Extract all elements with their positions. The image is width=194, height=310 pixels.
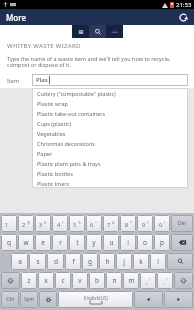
- staticText: Plastic take-out containers: [37, 110, 106, 117]
- button[interactable]: v: [72, 272, 88, 289]
- staticText: ^: [95, 220, 98, 225]
- staticText: f: [72, 257, 75, 266]
- staticText: j: [123, 257, 125, 266]
- button[interactable]: Christmas decorations: [32, 138, 188, 148]
- button[interactable]: Backspace: [171, 234, 193, 251]
- staticText: 6: [90, 221, 94, 228]
- staticText: u: [109, 238, 114, 247]
- button[interactable]: m: [123, 272, 139, 289]
- button[interactable]: q: [1, 234, 17, 251]
- button[interactable]: s: [29, 253, 46, 270]
- button[interactable]: Shift right: [174, 272, 193, 289]
- staticText: English(US): [84, 295, 108, 301]
- button[interactable]: 0: [154, 215, 170, 232]
- staticText: /: [62, 220, 64, 225]
- button[interactable]: Plastic plant pots & trays: [32, 158, 188, 168]
- staticText: x: [44, 276, 48, 285]
- button[interactable]: o: [137, 234, 153, 251]
- button[interactable]: Del: [171, 215, 193, 232]
- staticText: 5: [73, 221, 77, 228]
- button[interactable]: Plas: [32, 74, 188, 86]
- button[interactable]: Vegetables: [32, 128, 188, 138]
- button[interactable]: Cups (plastic): [32, 118, 188, 128]
- button[interactable]: List tab: [72, 25, 89, 38]
- button[interactable]: Shift: [1, 272, 20, 289]
- button[interactable]: Search tab: [89, 25, 106, 38]
- button[interactable]: h: [99, 253, 115, 270]
- staticText: 9: [142, 221, 146, 228]
- staticText: Plas: [36, 76, 48, 84]
- button[interactable]: .: [157, 272, 173, 289]
- staticText: Sym: [24, 296, 34, 303]
- button[interactable]: 1: [1, 215, 17, 232]
- button[interactable]: Plastic take-out containers: [32, 108, 188, 118]
- staticText: t: [76, 238, 79, 247]
- staticText: y: [92, 238, 96, 247]
- button[interactable]: t: [69, 234, 85, 251]
- button[interactable]: x: [38, 272, 54, 289]
- button[interactable]: f: [65, 253, 81, 270]
- button[interactable]: Space: [58, 291, 133, 308]
- button[interactable]: d: [47, 253, 64, 270]
- staticText: n: [112, 276, 117, 285]
- button[interactable]: 3: [35, 215, 51, 232]
- button[interactable]: More tab: [106, 25, 123, 38]
- button[interactable]: g: [82, 253, 98, 270]
- button[interactable]: 2: [18, 215, 34, 232]
- button[interactable]: k: [133, 253, 149, 270]
- staticText: c: [61, 276, 65, 285]
- staticText: Del: [178, 220, 186, 227]
- staticText: %: [78, 220, 81, 225]
- button[interactable]: c: [55, 272, 71, 289]
- staticText: Cutlery ("compostable" plastic): [37, 90, 116, 97]
- button[interactable]: i: [120, 234, 136, 251]
- staticText: ?: [166, 277, 168, 282]
- button[interactable]: e: [35, 234, 51, 251]
- button[interactable]: 7: [103, 215, 119, 232]
- button[interactable]: 6: [86, 215, 102, 232]
- button[interactable]: Paper: [32, 148, 188, 158]
- button[interactable]: 8: [120, 215, 136, 232]
- button[interactable]: ,: [140, 272, 156, 289]
- staticText: 7: [107, 221, 111, 228]
- button[interactable]: w: [18, 234, 34, 251]
- button[interactable]: b: [89, 272, 105, 289]
- button[interactable]: 5: [69, 215, 85, 232]
- button[interactable]: Input settings: [39, 291, 57, 308]
- button[interactable]: j: [116, 253, 132, 270]
- staticText: Plastic plant pots & trays: [37, 160, 101, 167]
- button[interactable]: z: [21, 272, 37, 289]
- button[interactable]: Plastic bottles: [32, 168, 188, 178]
- staticText: ,: [146, 278, 148, 285]
- button[interactable]: Move left: [134, 291, 163, 308]
- button[interactable]: 4: [52, 215, 68, 232]
- button[interactable]: 9: [137, 215, 153, 232]
- button[interactable]: Plastic wrap: [32, 98, 188, 108]
- staticText: d: [54, 257, 58, 266]
- staticText: 4: [57, 221, 61, 228]
- button[interactable]: Move right: [164, 291, 193, 308]
- button[interactable]: r: [52, 234, 68, 251]
- button[interactable]: Sym: [20, 291, 38, 308]
- staticText: o: [143, 238, 147, 247]
- button[interactable]: l: [150, 253, 166, 270]
- staticText: Item: [7, 77, 32, 84]
- staticText: ): [164, 220, 166, 225]
- button[interactable]: a: [11, 253, 28, 270]
- button[interactable]: Search: [167, 253, 193, 270]
- button[interactable]: Refresh: [176, 10, 190, 24]
- staticText: Type the name of a waste item and we'll …: [7, 55, 187, 69]
- button[interactable]: u: [103, 234, 119, 251]
- staticText: q: [7, 238, 11, 247]
- button[interactable]: p: [154, 234, 170, 251]
- button[interactable]: Ctrl: [1, 291, 19, 308]
- button[interactable]: Cutlery ("compostable" plastic): [32, 88, 188, 98]
- staticText: (: [147, 220, 149, 225]
- staticText: 21:53: [176, 1, 192, 9]
- staticText: Plastic wrap: [37, 100, 68, 107]
- button[interactable]: y: [86, 234, 102, 251]
- staticText: m: [128, 276, 135, 285]
- button[interactable]: n: [106, 272, 122, 289]
- staticText: 8: [125, 221, 129, 228]
- button[interactable]: Plastic liners: [32, 178, 188, 188]
